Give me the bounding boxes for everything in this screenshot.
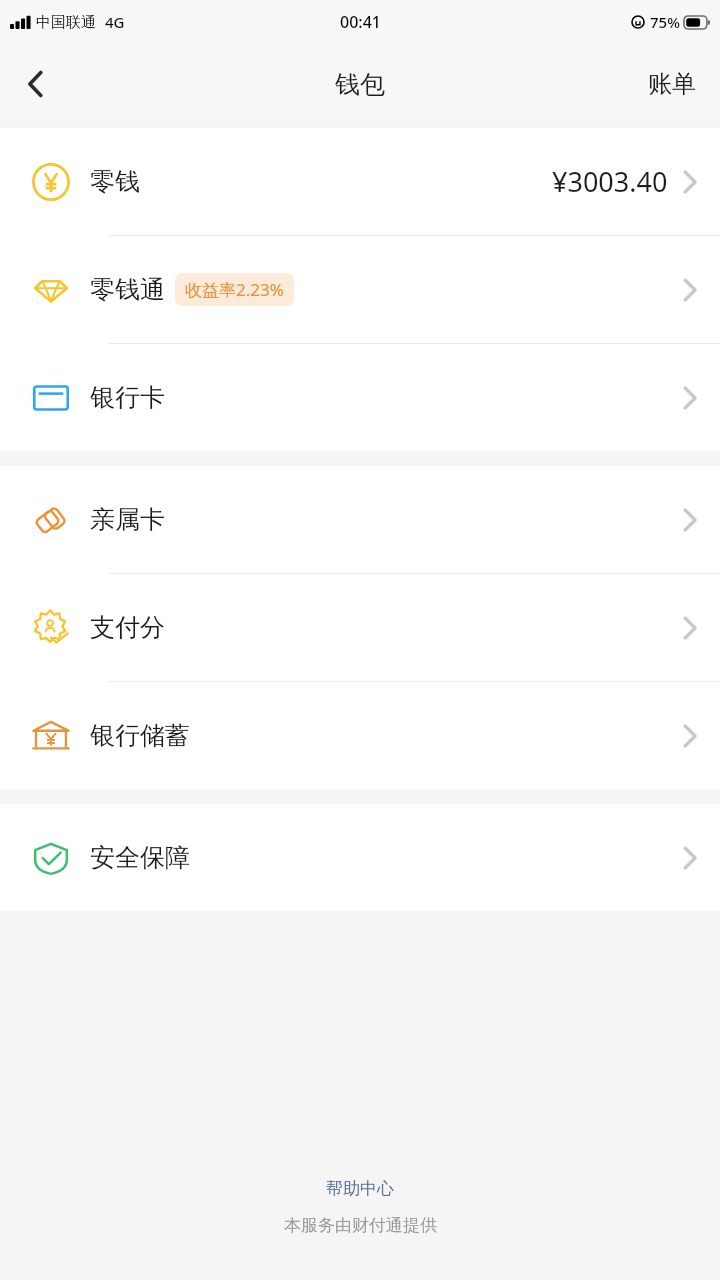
button[interactable]: 零钱 (0, 128, 720, 235)
button[interactable]: 帮助中心 (308, 1172, 412, 1205)
button[interactable]: Back (0, 44, 72, 124)
staticText: 收益率2.23% (185, 278, 284, 301)
staticText: 4G (105, 12, 125, 32)
staticText: 中国联通 (36, 13, 96, 32)
button[interactable]: 银行储蓄 (0, 682, 720, 789)
staticText: 支付分 (90, 612, 165, 643)
staticText: 帮助中心 (326, 1178, 394, 1199)
staticText: 银行卡 (90, 382, 165, 413)
staticText: 00:41 (340, 11, 381, 33)
button[interactable]: 安全保障 (0, 804, 720, 911)
staticText: 账单 (648, 69, 696, 99)
staticText: 亲属卡 (90, 504, 165, 535)
staticText: 本服务由财付通提供 (284, 1215, 437, 1236)
staticText: 银行储蓄 (90, 720, 190, 751)
button[interactable]: 零钱通 (0, 236, 720, 343)
button[interactable]: 亲属卡 (0, 466, 720, 573)
staticText: 75% (650, 12, 680, 32)
staticText: 零钱 (90, 166, 140, 197)
staticText: 钱包 (335, 69, 385, 100)
staticText: ¥3003.40 (552, 163, 668, 200)
staticText: 安全保障 (90, 842, 190, 873)
staticText: 零钱通 (90, 274, 165, 305)
button[interactable]: 支付分 (0, 574, 720, 681)
button[interactable]: 账单 (624, 44, 720, 124)
button[interactable]: 银行卡 (0, 344, 720, 451)
